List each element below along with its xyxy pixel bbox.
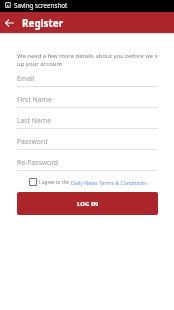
staticText: Email: [17, 74, 35, 83]
staticText: I agree to the: [39, 179, 71, 185]
staticText: Saving screenshot: [14, 1, 68, 10]
staticText: Register: [22, 16, 64, 29]
staticText: First Name: [17, 95, 52, 104]
button[interactable]: Re-Password: [17, 150, 158, 170]
staticText: up your account: [17, 60, 63, 68]
button[interactable]: LOG IN: [17, 192, 158, 215]
staticText: Re-Password: [17, 158, 58, 167]
staticText: LOG IN: [77, 200, 99, 208]
staticText: We need a few more details about you bef…: [17, 52, 158, 60]
button[interactable]: First Name: [17, 87, 158, 107]
button[interactable]: Back: [0, 12, 18, 33]
button[interactable]: Password: [17, 129, 158, 149]
staticText: Daily News Terms & Conditions: [71, 179, 147, 186]
staticText: Password: [17, 137, 48, 146]
staticText: Last Name: [17, 116, 52, 125]
button[interactable]: I agree to the: [17, 176, 158, 188]
button[interactable]: Email: [17, 68, 158, 86]
button[interactable]: Last Name: [17, 108, 158, 128]
